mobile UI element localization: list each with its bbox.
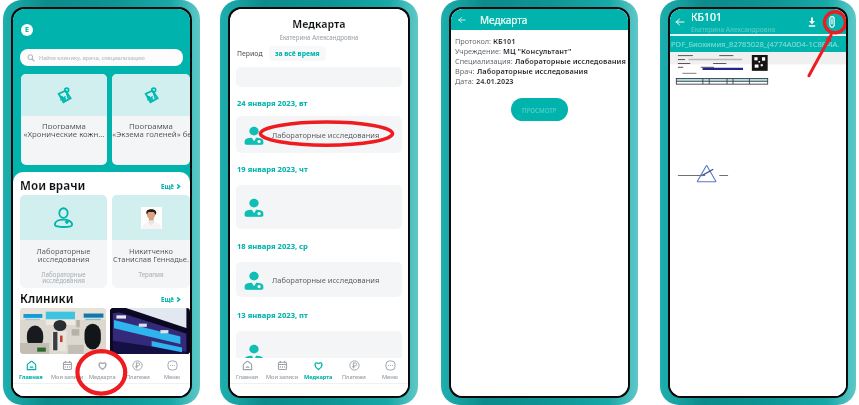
staticText: Ещё	[161, 295, 174, 303]
button[interactable]: Программа	[112, 74, 190, 165]
button[interactable]: Back	[456, 14, 468, 26]
button[interactable]: Download	[805, 15, 819, 29]
staticText: «Экзема голеней» бе.	[112, 129, 190, 140]
staticText: Лабораторные исследования	[515, 56, 626, 66]
button[interactable]: Меню	[155, 358, 190, 383]
staticText: Е	[25, 25, 29, 35]
staticText: Программа	[112, 121, 190, 129]
button[interactable]: Программа	[21, 74, 107, 165]
staticText: Клиники	[20, 291, 74, 307]
staticText: Меню	[382, 373, 399, 381]
staticText: Программа	[21, 121, 107, 129]
button[interactable]: Никитченко Станислав Геннадье.	[112, 195, 190, 288]
button[interactable]: ПРОСМОТР	[511, 98, 568, 121]
button[interactable]: Меню	[372, 358, 408, 383]
staticText: PDF_Биохимия_82785028_(4774A0D4-1C8F-4A.	[671, 39, 840, 49]
staticText: Протокол:	[455, 36, 493, 46]
staticText: Мои записи	[266, 373, 299, 381]
staticText: Платежи	[126, 373, 150, 381]
button[interactable]: Главная	[230, 358, 265, 383]
button[interactable]: Мои записи	[49, 358, 85, 383]
staticText: Меню	[164, 373, 181, 381]
button[interactable]: Найти клинику, врача, специализацию	[20, 49, 183, 66]
button[interactable]: Attachment	[824, 14, 840, 30]
staticText: 19 января 2023, чт	[237, 164, 308, 174]
staticText: Медкарта	[480, 13, 528, 27]
staticText: Лабораторные исследования	[272, 130, 380, 140]
button[interactable]: Платежи	[120, 358, 155, 383]
staticText: за всё время	[275, 49, 320, 58]
staticText: Найти клинику, врача, специализацию	[39, 54, 145, 62]
button[interactable]: Ещё	[159, 180, 183, 192]
staticText: Терапия	[112, 270, 190, 278]
staticText: Лабораторные исследования	[20, 270, 107, 285]
button[interactable]: Back	[673, 15, 686, 28]
button[interactable]	[110, 308, 190, 354]
staticText: Медкарта	[89, 373, 116, 381]
button[interactable]: Медкарта	[300, 358, 336, 383]
staticText: Мои записи	[51, 373, 84, 381]
button[interactable]: Главная	[13, 358, 49, 383]
staticText: «Хронические кожн…	[21, 129, 107, 140]
button[interactable]	[20, 308, 106, 354]
staticText: Екатерина Александровна	[691, 25, 776, 34]
button[interactable]	[236, 185, 402, 229]
button[interactable]: Медкарта	[85, 358, 120, 383]
staticText: КБ101	[691, 10, 723, 24]
staticText: Главная	[19, 373, 43, 381]
staticText: Никитченко Станислав Геннадье.	[112, 246, 190, 264]
staticText: МЦ "Консультант"	[503, 46, 572, 56]
staticText: Лабораторные исследования	[272, 275, 380, 285]
staticText: Лабораторные исследования	[477, 66, 588, 76]
staticText: Дата:	[455, 76, 476, 86]
button[interactable]: Ещё	[159, 293, 183, 305]
staticText: ПРОСМОТР	[522, 106, 557, 114]
button[interactable]: Платежи	[336, 358, 372, 383]
staticText: Учреждение:	[455, 46, 503, 56]
staticText: Ещё	[161, 182, 174, 190]
button[interactable]	[236, 331, 402, 375]
staticText: Главная	[236, 373, 259, 381]
staticText: 24 января 2023, вт	[237, 98, 308, 108]
button[interactable]: Мои записи	[265, 358, 300, 383]
staticText: 18 января 2023, ср	[237, 241, 308, 251]
staticText: Специализация:	[455, 56, 515, 66]
button[interactable]: Лабораторные исследования	[236, 262, 402, 297]
staticText: 24.01.2023	[476, 76, 514, 86]
staticText: Екатерина Александровна	[230, 33, 408, 41]
button[interactable]: за всё время	[269, 46, 326, 61]
staticText: КБ101	[493, 36, 516, 46]
button[interactable]: Лабораторные исследования	[236, 116, 402, 153]
button[interactable]: Лабораторные исследования	[20, 195, 107, 288]
staticText: Лабораторные исследования	[20, 246, 107, 264]
staticText: 13 января 2023, пт	[237, 310, 308, 320]
staticText: Медкарта	[304, 373, 333, 381]
staticText: Платежи	[342, 373, 366, 381]
staticText: Врач:	[455, 66, 477, 76]
staticText: Медкарта	[230, 17, 408, 31]
staticText: Период	[237, 49, 263, 58]
button[interactable]: Profile	[21, 24, 33, 36]
staticText: Мои врачи	[20, 178, 86, 194]
